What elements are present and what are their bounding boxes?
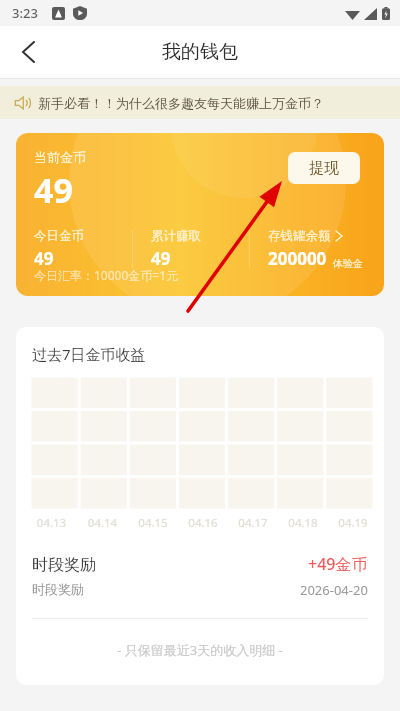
- staticText: 过去7日金币收益: [32, 344, 146, 364]
- staticText: 04.19: [328, 515, 378, 531]
- button[interactable]: 当前金币: [16, 133, 384, 296]
- staticText: 今日汇率：10000金币=1元: [34, 267, 179, 283]
- staticText: 提现: [309, 159, 339, 178]
- button[interactable]: 提现: [288, 152, 360, 184]
- staticText: 04.18: [278, 515, 328, 531]
- staticText: 存钱罐余额: [268, 228, 331, 244]
- staticText: 49: [34, 167, 73, 213]
- staticText: 3:23: [12, 4, 38, 22]
- staticText: 2026-04-20: [300, 581, 368, 599]
- staticText: 时段奖励: [32, 555, 96, 575]
- button[interactable]: 时段奖励: [16, 553, 384, 599]
- button[interactable]: 新手必看！！为什么很多趣友每天能赚上万金币？: [0, 86, 400, 119]
- staticText: 04.13: [26, 515, 77, 531]
- staticText: 累计赚取: [151, 228, 201, 244]
- staticText: 当前金币: [34, 149, 86, 165]
- staticText: 49: [151, 247, 171, 270]
- button[interactable]: Back: [6, 30, 50, 74]
- staticText: - 只保留最近3天的收入明细 -: [16, 641, 384, 659]
- staticText: 新手必看！！为什么很多趣友每天能赚上万金币？: [38, 95, 324, 111]
- staticText: 体验金: [333, 257, 363, 270]
- staticText: 04.16: [178, 515, 228, 531]
- staticText: 时段奖励: [32, 581, 84, 597]
- staticText: 49: [34, 247, 54, 270]
- staticText: +49金币: [308, 553, 368, 575]
- staticText: 我的钱包: [162, 40, 238, 64]
- staticText: 04.14: [77, 515, 128, 531]
- staticText: 今日金币: [34, 228, 84, 244]
- staticText: 04.17: [228, 515, 278, 531]
- staticText: 04.15: [128, 515, 178, 531]
- staticText: 200000: [268, 247, 327, 270]
